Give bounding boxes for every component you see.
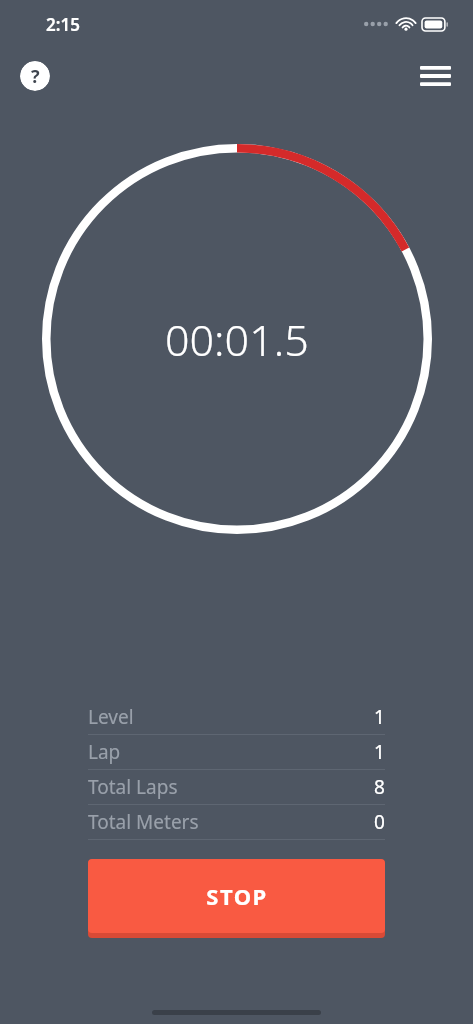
button[interactable]: STOP xyxy=(88,859,385,938)
button[interactable]: Level xyxy=(88,700,385,734)
button[interactable]: Total Laps xyxy=(88,770,385,804)
staticText: STOP xyxy=(206,881,268,911)
staticText: Total Meters xyxy=(88,809,199,835)
button[interactable]: Menu xyxy=(415,56,455,96)
staticText: Lap xyxy=(88,739,121,765)
button[interactable]: Help xyxy=(20,61,50,91)
staticText: 00:01.5 xyxy=(165,310,309,369)
staticText: 8 xyxy=(374,774,385,800)
staticText: 2:15 xyxy=(46,13,80,36)
staticText: 0 xyxy=(374,809,385,835)
staticText: Level xyxy=(88,704,134,730)
staticText: Total Laps xyxy=(88,774,178,800)
staticText: ? xyxy=(31,64,40,89)
staticText: 1 xyxy=(374,739,385,765)
button[interactable]: Lap xyxy=(88,735,385,769)
button[interactable]: Total Meters xyxy=(88,805,385,839)
staticText: 1 xyxy=(374,704,385,730)
